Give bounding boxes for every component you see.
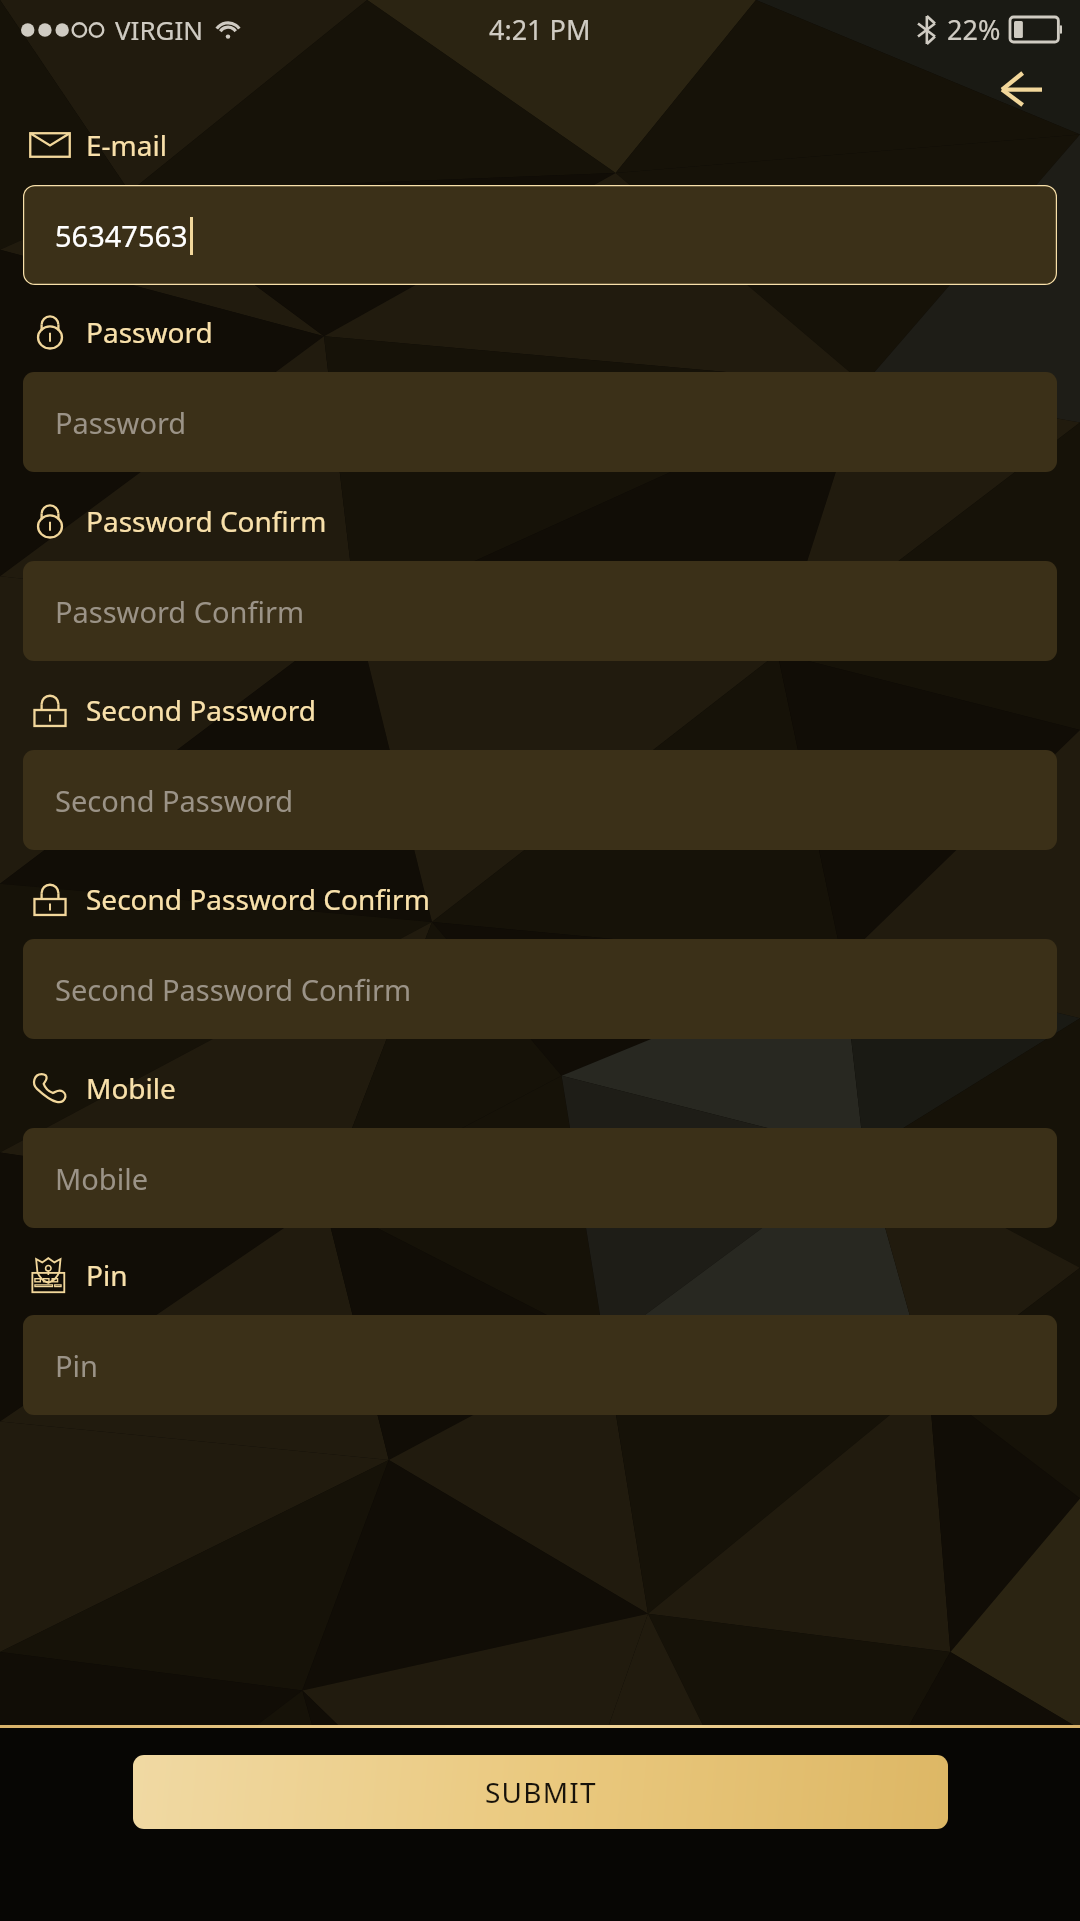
staticText: Second Password Confirm <box>86 880 430 918</box>
staticText: Second Password <box>86 691 316 729</box>
button[interactable]: Back <box>988 58 1054 120</box>
staticText: 4:21 PM <box>489 11 591 48</box>
staticText: Password Confirm <box>86 502 327 540</box>
staticText: Pin <box>55 1346 98 1385</box>
staticText: Mobile <box>86 1069 176 1107</box>
staticText: Password <box>55 403 187 442</box>
staticText: SUBMIT <box>485 1773 597 1811</box>
staticText: Password Confirm <box>55 592 305 631</box>
staticText: Password <box>86 313 213 351</box>
button[interactable]: Password <box>23 372 1057 472</box>
button[interactable]: Pin <box>23 1315 1057 1415</box>
staticText: Second Password Confirm <box>55 970 412 1009</box>
staticText: E-mail <box>86 126 167 164</box>
button[interactable]: 56347563 <box>23 185 1057 285</box>
staticText: 56347563 <box>55 216 188 255</box>
staticText: VIRGIN <box>115 12 204 47</box>
button[interactable]: Second Password Confirm <box>23 939 1057 1039</box>
staticText: 22% <box>947 11 1001 48</box>
button[interactable]: Password Confirm <box>23 561 1057 661</box>
staticText: Pin <box>86 1256 128 1294</box>
button[interactable]: SUBMIT <box>133 1755 948 1829</box>
button[interactable]: Second Password <box>23 750 1057 850</box>
staticText: Second Password <box>55 781 294 820</box>
button[interactable]: Mobile <box>23 1128 1057 1228</box>
staticText: Mobile <box>55 1159 149 1198</box>
